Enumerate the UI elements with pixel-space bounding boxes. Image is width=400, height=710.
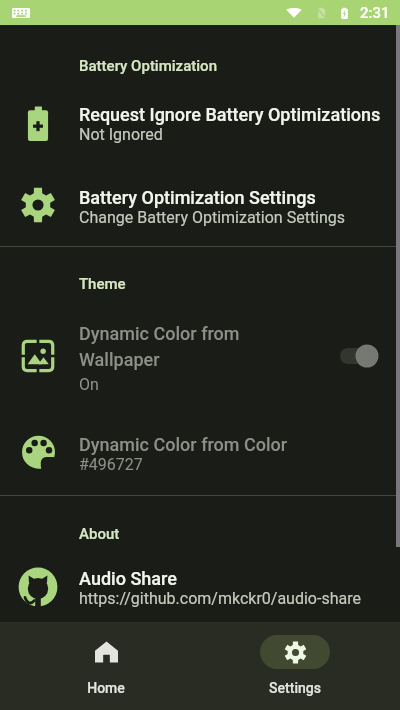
staticText: Dynamic Color from Color [79,434,288,455]
button[interactable]: Dynamic Color from Color [0,434,400,474]
staticText: About [79,525,120,543]
staticText: 2:31 [360,4,390,22]
staticText: Theme [79,275,126,293]
staticText: Settings [269,680,321,696]
staticText: Audio Share [79,568,177,589]
button[interactable]: Request Ignore Battery Optimizations [0,104,400,144]
button[interactable]: Home [71,622,141,696]
staticText: #496727 [79,455,143,474]
staticText: Not Ignored [79,125,163,144]
button[interactable]: Dynamic Color from Wallpaper [0,323,400,394]
other: Dynamic color from wallpaper toggle [340,343,382,369]
button[interactable]: Settings [260,622,330,696]
staticText: Dynamic Color from Wallpaper [79,323,251,370]
staticText: On [79,375,99,394]
button[interactable]: Battery Optimization Settings [0,187,400,227]
staticText: https://github.com/mkckr0/audio-share [79,589,361,608]
staticText: Change Battery Optimization Settings [79,208,346,227]
other: Keyboard [12,8,30,18]
staticText: Battery Optimization Settings [79,187,316,208]
button[interactable]: Audio Share [0,568,400,608]
staticText: Request Ignore Battery Optimizations [79,104,381,125]
staticText: Battery Optimization [79,57,217,75]
staticText: Home [87,680,125,696]
